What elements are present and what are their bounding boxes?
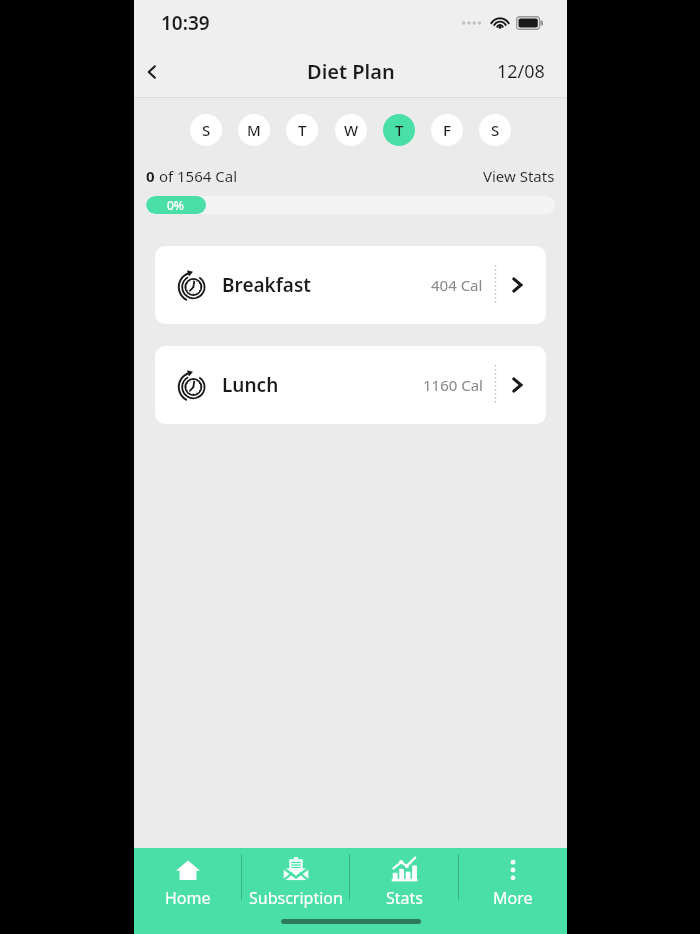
button[interactable]: S bbox=[479, 114, 511, 146]
staticText: M bbox=[247, 120, 261, 140]
button[interactable]: Lunch bbox=[155, 346, 546, 424]
staticText: More bbox=[493, 887, 533, 909]
button[interactable]: View Stats bbox=[483, 166, 555, 186]
button[interactable]: More bbox=[459, 848, 567, 910]
staticText: 0% bbox=[167, 197, 185, 213]
button[interactable]: T bbox=[383, 114, 415, 146]
staticText: 0 bbox=[146, 166, 155, 186]
staticText: T bbox=[395, 120, 404, 140]
staticText: W bbox=[344, 120, 359, 140]
staticText: of 1564 Cal bbox=[155, 166, 238, 186]
staticText: S bbox=[202, 120, 211, 140]
staticText: Home bbox=[165, 887, 211, 909]
staticText: T bbox=[298, 120, 307, 140]
staticText: Lunch bbox=[222, 372, 279, 398]
staticText: Diet Plan bbox=[307, 58, 395, 85]
button[interactable]: Stats bbox=[350, 848, 458, 910]
staticText: Subscription bbox=[249, 887, 343, 909]
staticText: View Stats bbox=[483, 166, 555, 186]
staticText: 1160 Cal bbox=[423, 375, 483, 395]
staticText: F bbox=[443, 120, 451, 140]
staticText: Stats bbox=[386, 887, 423, 909]
staticText: Breakfast bbox=[222, 272, 312, 298]
button[interactable]: S bbox=[190, 114, 222, 146]
button[interactable]: T bbox=[286, 114, 318, 146]
staticText: 12/08 bbox=[497, 59, 545, 84]
button[interactable]: Back bbox=[130, 50, 174, 94]
button[interactable]: W bbox=[335, 114, 367, 146]
button[interactable]: Subscription bbox=[242, 848, 349, 910]
button[interactable]: F bbox=[431, 114, 463, 146]
button[interactable]: M bbox=[238, 114, 270, 146]
staticText: 404 Cal bbox=[431, 275, 483, 295]
button[interactable]: Home bbox=[134, 848, 241, 910]
staticText: S bbox=[491, 120, 500, 140]
button[interactable]: Breakfast bbox=[155, 246, 546, 324]
staticText: 10:39 bbox=[161, 10, 210, 36]
